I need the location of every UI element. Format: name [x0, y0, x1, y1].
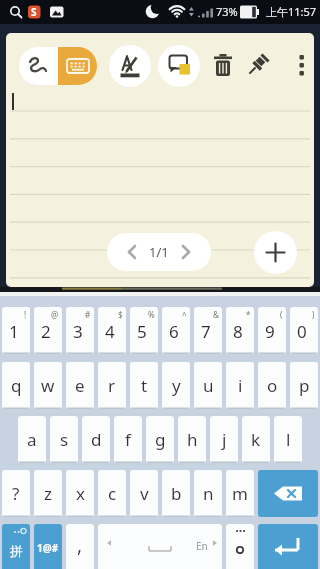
button[interactable]: g: [146, 416, 174, 463]
staticText: 1/1: [149, 243, 169, 261]
staticText: (: [280, 309, 283, 320]
button[interactable]: e: [66, 362, 94, 409]
button[interactable]: j: [210, 416, 238, 463]
staticText: a: [27, 428, 37, 451]
button[interactable]: [258, 470, 318, 517]
staticText: &: [213, 309, 219, 320]
button[interactable]: 9: [258, 307, 286, 354]
button[interactable]: [19, 47, 58, 85]
button[interactable]: l: [274, 416, 302, 463]
staticText: 拼: [10, 543, 23, 559]
staticText: 1: [9, 320, 19, 343]
staticText: !: [24, 309, 27, 320]
staticText: ,: [77, 532, 83, 558]
button[interactable]: 6: [162, 307, 190, 354]
staticText: b: [171, 482, 182, 505]
button[interactable]: [226, 524, 254, 569]
staticText: @: [51, 309, 59, 320]
staticText: r: [108, 374, 116, 397]
button[interactable]: [289, 47, 314, 85]
button[interactable]: [254, 231, 297, 274]
button[interactable]: w: [34, 362, 62, 409]
staticText: w: [41, 374, 55, 397]
button[interactable]: y: [162, 362, 190, 409]
button[interactable]: n: [194, 470, 222, 517]
button[interactable]: 拼: [2, 524, 30, 569]
button[interactable]: 1@#: [34, 524, 62, 569]
staticText: ?: [12, 482, 20, 505]
button[interactable]: v: [130, 470, 158, 517]
staticText: En: [196, 539, 208, 553]
staticText: y: [172, 374, 181, 397]
staticText: 7: [201, 320, 211, 343]
staticText: o: [267, 374, 278, 397]
staticText: c: [108, 482, 117, 505]
staticText: S: [31, 5, 37, 19]
staticText: x: [76, 482, 85, 505]
button[interactable]: t: [130, 362, 158, 409]
staticText: *: [246, 309, 251, 320]
staticText: h: [187, 428, 198, 451]
staticText: n: [203, 482, 214, 505]
button[interactable]: f: [114, 416, 142, 463]
staticText: d: [91, 428, 102, 451]
button[interactable]: x: [66, 470, 94, 517]
button[interactable]: 1: [2, 307, 30, 354]
staticText: 2: [41, 320, 51, 343]
button[interactable]: a: [18, 416, 46, 463]
staticText: 上午11:57: [266, 4, 317, 19]
staticText: $: [118, 309, 123, 320]
staticText: 8: [233, 320, 243, 343]
button[interactable]: ,: [66, 524, 94, 569]
button[interactable]: p: [290, 362, 318, 409]
button[interactable]: En: [98, 524, 222, 569]
button[interactable]: c: [98, 470, 126, 517]
button[interactable]: u: [194, 362, 222, 409]
staticText: m: [232, 482, 248, 505]
button[interactable]: d: [82, 416, 110, 463]
staticText: 1@#: [37, 541, 59, 555]
staticText: u: [203, 374, 214, 397]
staticText: s: [60, 428, 69, 451]
button[interactable]: 7: [194, 307, 222, 354]
button[interactable]: k: [242, 416, 270, 463]
button[interactable]: i: [226, 362, 254, 409]
button[interactable]: [158, 45, 200, 87]
staticText: t: [141, 374, 148, 397]
staticText: 73%: [216, 4, 238, 19]
staticText: ): [312, 309, 315, 320]
button[interactable]: ?: [2, 470, 30, 517]
button[interactable]: [258, 524, 318, 569]
button[interactable]: q: [2, 362, 30, 409]
button[interactable]: 4: [98, 307, 126, 354]
button[interactable]: b: [162, 470, 190, 517]
staticText: 6: [169, 320, 179, 343]
staticText: 3: [73, 320, 83, 343]
button[interactable]: 0: [290, 307, 318, 354]
staticText: v: [140, 482, 149, 505]
staticText: e: [75, 374, 85, 397]
button[interactable]: m: [226, 470, 254, 517]
button[interactable]: h: [178, 416, 206, 463]
button[interactable]: [109, 45, 151, 87]
button[interactable]: s: [50, 416, 78, 463]
button[interactable]: 5: [130, 307, 158, 354]
staticText: 5: [137, 320, 147, 343]
staticText: #: [85, 309, 91, 320]
staticText: i: [238, 374, 243, 397]
button[interactable]: [241, 47, 277, 85]
staticText: j: [222, 428, 227, 451]
button[interactable]: 8: [226, 307, 254, 354]
button[interactable]: z: [34, 470, 62, 517]
staticText: 0: [297, 320, 307, 343]
button[interactable]: [205, 47, 241, 85]
button[interactable]: [58, 47, 97, 85]
button[interactable]: 2: [34, 307, 62, 354]
staticText: l: [286, 428, 291, 451]
staticText: z: [44, 482, 52, 505]
button[interactable]: 3: [66, 307, 94, 354]
button[interactable]: 1/1: [107, 233, 211, 271]
button[interactable]: r: [98, 362, 126, 409]
staticText: ^: [182, 309, 187, 320]
button[interactable]: o: [258, 362, 286, 409]
